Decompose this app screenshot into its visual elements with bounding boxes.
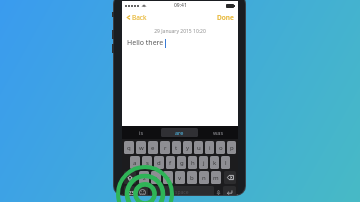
staticText: space (175, 189, 189, 195)
button[interactable]: 123 (124, 186, 135, 195)
button[interactable]: r (160, 141, 170, 154)
button[interactable]: 29 January 2015 10:20 (122, 24, 238, 112)
staticText: x (154, 174, 158, 182)
button[interactable]: p (227, 141, 236, 154)
staticText: t (175, 144, 178, 152)
staticText: s (146, 159, 149, 167)
button[interactable]: t (172, 141, 181, 154)
staticText: l (225, 159, 227, 167)
staticText: h (191, 159, 195, 167)
staticText: is (139, 129, 144, 136)
button[interactable]: Backspace (224, 171, 236, 184)
staticText: f (169, 159, 172, 167)
button[interactable]: o (216, 141, 225, 154)
button[interactable]: is (123, 128, 159, 137)
button[interactable]: k (210, 156, 219, 169)
button[interactable]: Back (124, 11, 149, 24)
staticText: d (157, 159, 161, 167)
staticText: e (151, 144, 155, 152)
staticText: y (186, 144, 190, 152)
staticText: Hello there (127, 38, 164, 48)
button[interactable]: are (161, 128, 198, 137)
button[interactable]: Shift (124, 171, 136, 184)
staticText: Back (132, 13, 147, 22)
button[interactable]: Tap indicator (116, 165, 174, 202)
button[interactable]: was (200, 128, 237, 137)
button[interactable]: Microphone (216, 186, 221, 195)
button[interactable]: space (150, 186, 214, 195)
button[interactable]: d (154, 156, 164, 169)
button[interactable]: u (194, 141, 203, 154)
button[interactable]: Done (215, 11, 236, 24)
staticText: r (164, 144, 167, 152)
staticText: k (213, 159, 217, 167)
staticText: c (167, 174, 170, 182)
staticText: p (230, 144, 234, 152)
staticText: 29 January 2015 10:20 (154, 28, 206, 35)
staticText: o (219, 144, 223, 152)
staticText: z (143, 174, 146, 182)
button[interactable]: n (199, 171, 209, 184)
button[interactable]: q (124, 141, 134, 154)
button[interactable]: Emoji (137, 186, 148, 195)
button[interactable]: v (175, 171, 185, 184)
button[interactable]: c (163, 171, 173, 184)
staticText: was (213, 129, 224, 136)
staticText: n (202, 174, 206, 182)
staticText: 09:41 (174, 2, 187, 9)
button[interactable]: a (130, 156, 140, 169)
button[interactable]: s (142, 156, 152, 169)
staticText: j (203, 159, 205, 167)
button[interactable]: j (199, 156, 208, 169)
staticText: 123 (126, 190, 134, 195)
staticText: m (213, 174, 219, 182)
button[interactable]: x (151, 171, 161, 184)
staticText: i (209, 144, 211, 152)
staticText: b (190, 174, 194, 182)
button[interactable]: l (221, 156, 230, 169)
button[interactable]: Return (223, 186, 236, 195)
staticText: are (175, 129, 184, 136)
staticText: w (139, 144, 144, 152)
staticText: q (127, 144, 131, 152)
button[interactable]: m (211, 171, 221, 184)
staticText: a (133, 159, 137, 167)
staticText: v (178, 174, 182, 182)
button[interactable]: h (188, 156, 197, 169)
staticText: Done (217, 13, 234, 22)
button[interactable]: e (148, 141, 158, 154)
button[interactable]: w (136, 141, 146, 154)
staticText: u (197, 144, 201, 152)
button[interactable]: z (139, 171, 149, 184)
staticText: g (180, 159, 184, 167)
button[interactable]: y (183, 141, 192, 154)
button[interactable]: i (205, 141, 214, 154)
button[interactable]: g (177, 156, 186, 169)
button[interactable]: b (187, 171, 197, 184)
button[interactable]: f (166, 156, 175, 169)
